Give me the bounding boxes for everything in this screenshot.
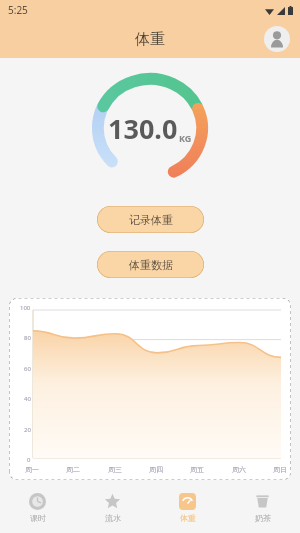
button[interactable]: 100 [9, 298, 291, 480]
staticText: 5:25 [8, 3, 28, 17]
staticText: 周六 [232, 465, 246, 474]
staticText: 0 [27, 456, 31, 464]
staticText: 周四 [149, 465, 163, 474]
staticText: KG [179, 132, 192, 144]
staticText: 100 [20, 304, 31, 312]
staticText: 课时 [30, 513, 46, 523]
staticText: 周二 [66, 465, 80, 474]
button[interactable]: 体重 [150, 483, 225, 533]
staticText: 记录体重 [129, 213, 173, 227]
staticText: 体重 [180, 513, 196, 523]
staticText: 周五 [190, 465, 204, 474]
staticText: 周日 [273, 465, 287, 474]
button[interactable]: 记录体重 [97, 206, 204, 233]
button[interactable]: 体重数据 [97, 251, 204, 278]
staticText: 40 [24, 395, 31, 403]
button[interactable]: 奶茶 [225, 483, 300, 533]
staticText: 周一 [25, 465, 39, 474]
staticText: 奶茶 [255, 513, 271, 523]
staticText: 周三 [108, 465, 122, 474]
staticText: 130.0 [108, 110, 178, 147]
staticText: 80 [24, 334, 31, 342]
staticText: 体重 [135, 30, 165, 49]
staticText: 20 [24, 426, 31, 434]
staticText: 60 [24, 365, 31, 373]
staticText: 流水 [105, 513, 121, 523]
staticText: 体重数据 [129, 258, 173, 272]
button[interactable]: 课时 [0, 483, 75, 533]
button[interactable]: Profile [264, 26, 290, 52]
button[interactable]: 流水 [75, 483, 150, 533]
